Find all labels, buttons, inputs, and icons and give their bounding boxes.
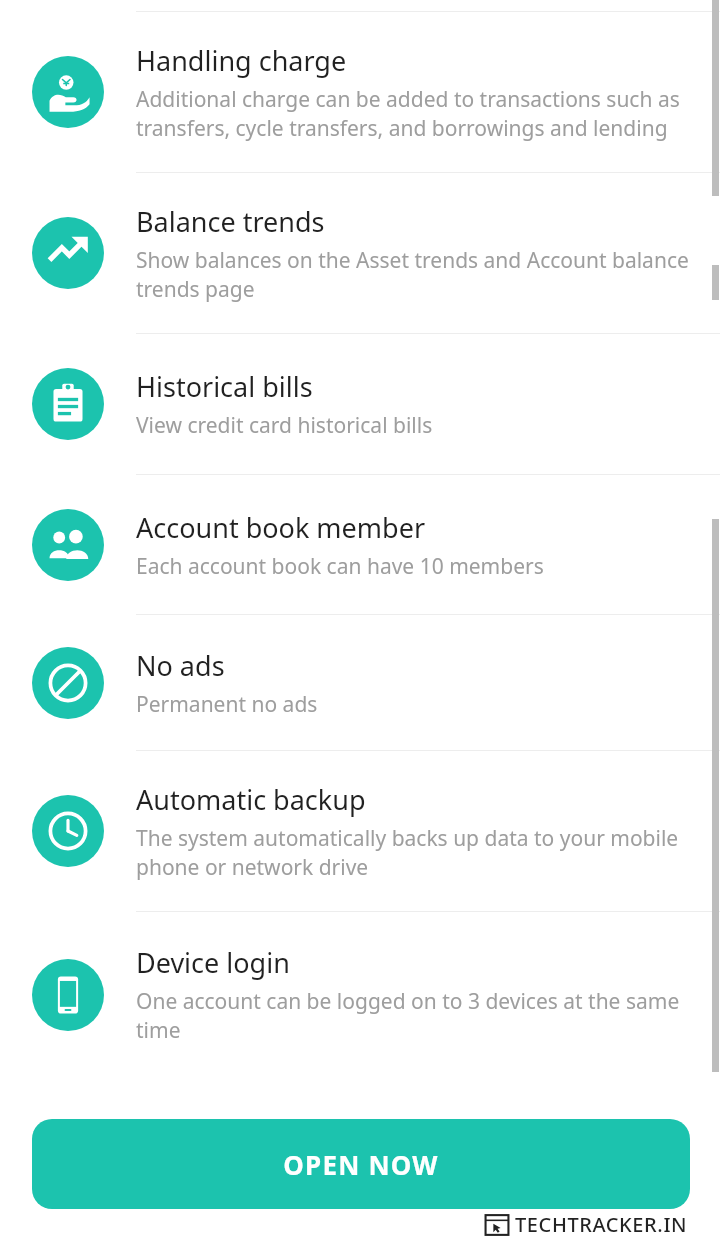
staticText: No ads [136,647,225,684]
button[interactable]: Automatic backup [0,751,720,911]
staticText: Each account book can have 10 members [136,552,544,581]
other: Device login [32,959,104,1031]
staticText: Handling charge [136,42,347,79]
button[interactable]: Device login [0,912,720,1077]
other: Historical bills [32,368,104,440]
staticText: One account can be logged on to 3 device… [136,987,680,1016]
staticText: OPEN NOW [283,1147,439,1182]
button[interactable]: No ads [0,615,720,750]
staticText: Balance trends [136,203,325,240]
staticText: transfers, cycle transfers, and borrowin… [136,114,668,143]
staticText: Permanent no ads [136,690,318,719]
other: Balance trends [32,217,104,289]
staticText: Account book member [136,509,426,546]
staticText: time [136,1016,181,1045]
button[interactable]: Historical bills [0,334,720,474]
staticText: View credit card historical bills [136,411,433,440]
staticText: Show balances on the Asset trends and Ac… [136,246,689,275]
button[interactable]: OPEN NOW [32,1119,690,1209]
other: No ads [32,647,104,719]
staticText: Automatic backup [136,781,366,818]
button[interactable]: Account book member [0,475,720,614]
staticText: trends page [136,275,255,304]
other: Account book member [32,509,104,581]
staticText: Historical bills [136,368,313,405]
staticText: The system automatically backs up data t… [136,824,679,853]
staticText: Additional charge can be added to transa… [136,85,680,114]
button[interactable]: Balance trends [0,173,720,333]
staticText: phone or network drive [136,853,369,882]
other: Handling charge [32,56,104,128]
button[interactable]: Handling charge [0,12,720,172]
staticText: TECHTRACKER.IN [515,1211,688,1238]
staticText: Device login [136,944,290,981]
other: Automatic backup [32,795,104,867]
